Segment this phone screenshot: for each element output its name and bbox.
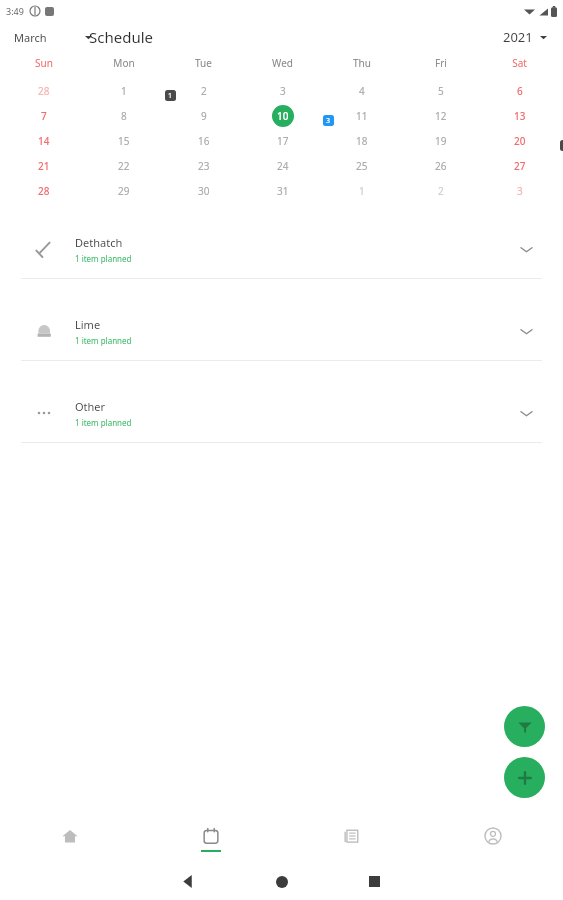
button[interactable]: 8 (84, 103, 164, 128)
staticText: 2 (438, 184, 444, 198)
button[interactable]: Filter (504, 706, 545, 747)
button[interactable]: 6 (480, 78, 559, 103)
button[interactable]: 27 (480, 153, 559, 178)
button[interactable]: March (10, 26, 96, 49)
staticText: Other (75, 399, 106, 414)
button[interactable]: Add (504, 757, 545, 798)
button[interactable]: 21 (4, 153, 84, 178)
staticText: 3:49 (6, 5, 24, 17)
button[interactable]: 4 (322, 78, 401, 103)
staticText: Sat (512, 56, 527, 70)
staticText: 1 item planned (75, 253, 132, 264)
staticText: 10 (277, 109, 289, 123)
staticText: 22 (118, 159, 130, 173)
button[interactable]: 1 (84, 78, 164, 103)
staticText: 5 (438, 84, 444, 98)
staticText: 31 (277, 184, 289, 198)
staticText: 28 (38, 84, 50, 98)
staticText: 20 (514, 134, 526, 148)
staticText: 12 (435, 109, 447, 123)
button[interactable]: 12 (401, 103, 480, 128)
staticText: 8 (121, 109, 127, 123)
staticText: 2 (201, 84, 207, 98)
staticText: 1 (121, 84, 127, 98)
button[interactable]: 11 (322, 103, 401, 128)
staticText: 28 (38, 184, 50, 198)
button[interactable]: 30 (164, 178, 243, 203)
button[interactable]: 1 (322, 178, 401, 203)
staticText: 4 (359, 84, 365, 98)
staticText: Sun (35, 56, 53, 70)
button[interactable]: 31 (243, 178, 322, 203)
staticText: Fri (435, 56, 447, 70)
button[interactable]: 3 (480, 178, 559, 203)
button[interactable]: Schedule (140, 817, 281, 862)
button[interactable]: 19 (401, 128, 480, 153)
button[interactable]: Dethatch (13, 219, 550, 279)
staticText: Schedule (89, 27, 153, 47)
button[interactable]: 5 (401, 78, 480, 103)
button[interactable]: 17 (243, 128, 322, 153)
staticText: 1 (168, 91, 173, 101)
button[interactable]: Home (0, 817, 140, 862)
staticText: 24 (277, 159, 289, 173)
button[interactable]: 26 (401, 153, 480, 178)
staticText: Tue (195, 56, 212, 70)
staticText: 3 (326, 116, 331, 126)
button[interactable]: 15 (84, 128, 164, 153)
button[interactable]: Lime (13, 301, 550, 361)
staticText: 11 (356, 109, 368, 123)
staticText: 9 (201, 109, 207, 123)
staticText: 19 (435, 134, 447, 148)
button[interactable]: 14 (4, 128, 84, 153)
staticText: March (14, 30, 47, 45)
button[interactable]: 2021 (499, 24, 551, 50)
staticText: Thu (353, 56, 371, 70)
button[interactable]: 16 (164, 128, 243, 153)
button[interactable]: 2 (164, 78, 243, 103)
staticText: 18 (356, 134, 368, 148)
staticText: Dethatch (75, 235, 123, 250)
staticText: 25 (356, 159, 368, 173)
staticText: Wed (272, 56, 293, 70)
staticText: 6 (517, 84, 523, 98)
staticText: 16 (198, 134, 210, 148)
button[interactable]: 20 (480, 128, 559, 153)
button[interactable]: Journal (281, 817, 422, 862)
staticText: 1 item planned (75, 417, 132, 428)
button[interactable]: 28 (4, 178, 84, 203)
button[interactable]: 9 (164, 103, 243, 128)
staticText: 1 (359, 184, 365, 198)
staticText: 1 item planned (75, 335, 132, 346)
button[interactable]: 22 (84, 153, 164, 178)
button[interactable]: 18 (322, 128, 401, 153)
button[interactable]: 2 (401, 178, 480, 203)
staticText: 14 (38, 134, 50, 148)
staticText: 21 (38, 159, 50, 173)
staticText: 23 (198, 159, 210, 173)
staticText: Lime (75, 317, 101, 332)
button[interactable]: 7 (4, 103, 84, 128)
button[interactable]: 10 (243, 103, 322, 128)
staticText: 15 (118, 134, 130, 148)
staticText: 27 (514, 159, 526, 173)
button[interactable]: 23 (164, 153, 243, 178)
button[interactable]: 25 (322, 153, 401, 178)
staticText: 13 (514, 109, 526, 123)
button[interactable]: 13 (480, 103, 559, 128)
staticText: 3 (280, 84, 286, 98)
staticText: 7 (41, 109, 47, 123)
staticText: 30 (198, 184, 210, 198)
button[interactable]: 24 (243, 153, 322, 178)
button[interactable]: 28 (4, 78, 84, 103)
button[interactable]: Profile (422, 817, 563, 862)
staticText: 17 (277, 134, 289, 148)
staticText: 3 (517, 184, 523, 198)
staticText: 2021 (503, 28, 533, 46)
button[interactable]: 3 (243, 78, 322, 103)
button[interactable]: Other (13, 383, 550, 443)
button[interactable]: 29 (84, 178, 164, 203)
staticText: 29 (118, 184, 130, 198)
staticText: Mon (113, 56, 135, 70)
staticText: 26 (435, 159, 447, 173)
